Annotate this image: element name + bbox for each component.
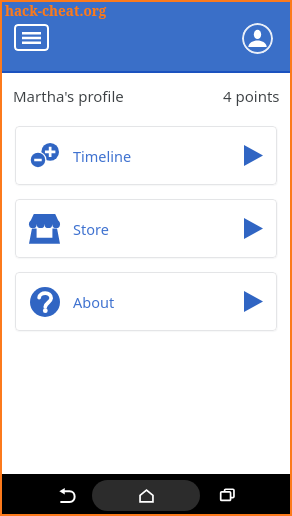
button[interactable]: Timeline xyxy=(15,126,277,185)
staticText: hack-cheat.org xyxy=(5,2,107,20)
staticText: Martha's profile xyxy=(13,86,124,106)
button[interactable]: Home xyxy=(92,480,200,511)
button[interactable]: Back xyxy=(52,480,82,510)
staticText: 4 points xyxy=(223,86,280,106)
button[interactable]: Recent apps xyxy=(212,480,242,510)
button[interactable]: About xyxy=(15,272,277,331)
staticText: Timeline xyxy=(73,146,132,166)
button[interactable]: Profile xyxy=(242,23,273,54)
staticText: About xyxy=(73,292,115,312)
staticText: Store xyxy=(73,219,109,239)
button[interactable]: Store xyxy=(15,199,277,258)
button[interactable]: Menu xyxy=(14,24,49,51)
